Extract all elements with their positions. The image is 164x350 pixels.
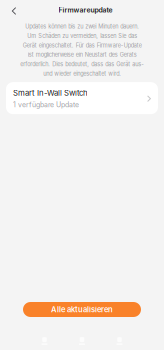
- staticText: 1 verfügbare Update: [13, 101, 79, 109]
- staticText: Smart In-Wall Switch: [13, 88, 88, 98]
- button[interactable]: Alle aktualisieren: [23, 302, 141, 317]
- staticText: Firmwareupdate: [58, 6, 112, 14]
- staticText: Updates können bis zu zwei Minuten dauer…: [20, 23, 144, 77]
- button[interactable]: Smart In-Wall Switch: [6, 82, 158, 114]
- button[interactable]: Back: [2, 1, 24, 19]
- staticText: Alle aktualisieren: [51, 305, 113, 314]
